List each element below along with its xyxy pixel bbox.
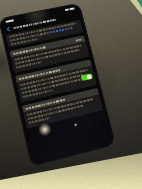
button[interactable]: Photo of a phone showing battery setting… — [0, 0, 142, 189]
button[interactable]: Back — [4, 25, 13, 34]
button[interactable]: Toggle — [80, 73, 93, 81]
button[interactable] — [22, 88, 103, 129]
button[interactable] — [9, 35, 89, 73]
button[interactable]: Toggle — [15, 59, 97, 103]
button[interactable] — [6, 19, 83, 48]
